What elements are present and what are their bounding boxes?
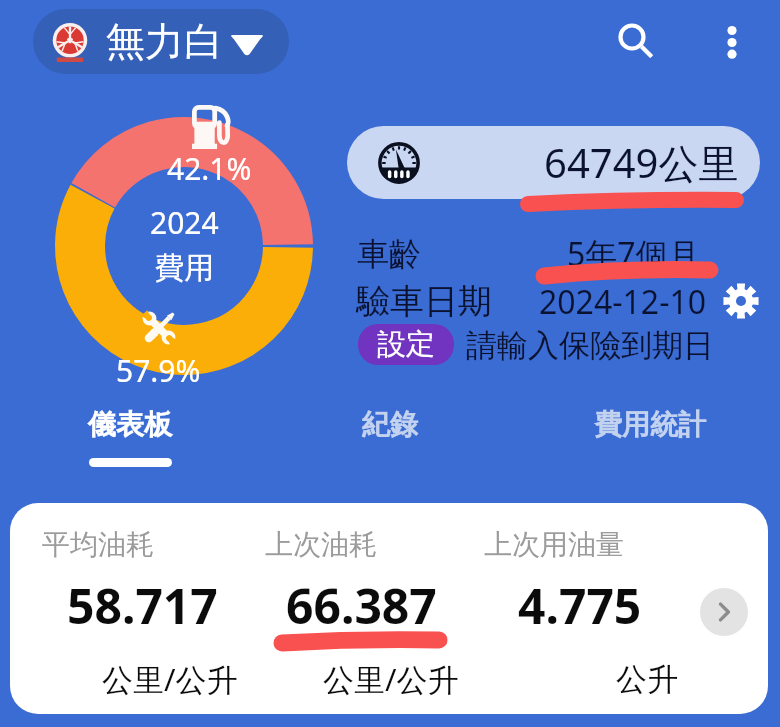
staticText: 58.717 [67,573,218,638]
button[interactable]: More options [704,9,760,65]
staticText: 公升 [616,660,678,699]
staticText: 驗車日期 [356,280,492,323]
staticText: 2024-12-10 [539,280,707,324]
staticText: 42.1% [167,148,252,189]
staticText: 上次用油量 [484,527,624,562]
staticText: 設定 [377,326,435,363]
staticText: 66.387 [286,573,437,638]
staticText: 紀錄 [362,407,418,442]
button[interactable]: Search [604,9,660,65]
button[interactable]: Next [700,588,748,636]
staticText: 64749公里 [544,135,739,190]
button[interactable]: 紀錄 [300,398,480,476]
staticText: 無力白 [106,17,223,66]
staticText: 費用 [154,249,214,287]
staticText: 5年7個月 [567,232,700,276]
button[interactable]: 費用統計 [560,398,740,476]
button[interactable]: 無力白 [33,9,289,74]
staticText: 費用統計 [594,407,706,442]
staticText: 公里/公升 [323,658,459,700]
button[interactable]: Settings [719,279,763,323]
staticText: 57.9% [116,350,201,391]
button[interactable]: 儀表板 [40,398,220,476]
staticText: 上次油耗 [265,527,377,562]
button[interactable]: 設定 [358,324,454,365]
staticText: 公里/公升 [102,658,238,700]
staticText: 平均油耗 [42,527,154,562]
staticText: 請輸入保險到期日 [466,326,714,365]
staticText: 2024 [150,202,219,243]
button[interactable]: 64749公里 [347,126,760,199]
staticText: 儀表板 [88,407,172,442]
staticText: 車齡 [357,234,421,274]
staticText: 4.775 [518,573,642,638]
